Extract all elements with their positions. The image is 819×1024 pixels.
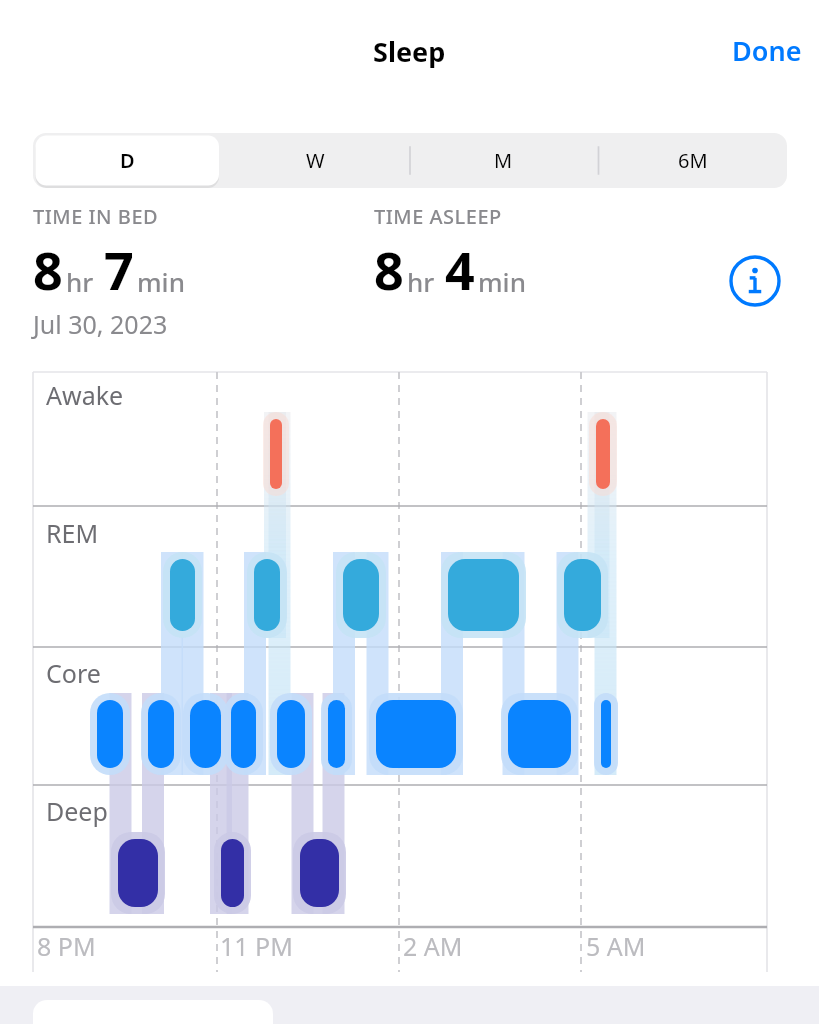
- staticText: 8: [33, 234, 63, 305]
- staticText: REM: [46, 516, 99, 550]
- staticText: 5 AM: [586, 929, 646, 963]
- staticText: 8 PM: [37, 929, 96, 963]
- staticText: TIME ASLEEP: [374, 203, 502, 230]
- staticText: 7: [104, 234, 134, 305]
- staticText: 6M: [678, 147, 708, 174]
- staticText: hr: [407, 264, 435, 299]
- staticText: 4: [445, 234, 475, 305]
- staticText: Deep: [46, 794, 108, 828]
- staticText: Done: [732, 32, 802, 69]
- staticText: 2 AM: [403, 929, 463, 963]
- staticText: 8: [374, 234, 404, 305]
- button[interactable]: M: [409, 133, 598, 188]
- staticText: Awake: [46, 378, 124, 412]
- button[interactable]: Done: [715, 22, 819, 79]
- button[interactable]: D: [33, 133, 221, 188]
- staticText: 11 PM: [220, 929, 293, 963]
- staticText: M: [494, 147, 513, 174]
- staticText: hr: [66, 264, 94, 299]
- button[interactable]: About sleep stages: [727, 253, 783, 309]
- staticText: min: [137, 264, 185, 299]
- button[interactable]: W: [221, 133, 409, 188]
- staticText: Jul 30, 2023: [33, 307, 168, 341]
- staticText: TIME IN BED: [33, 203, 159, 230]
- button[interactable]: 6M: [598, 133, 787, 188]
- staticText: min: [478, 264, 526, 299]
- staticText: W: [306, 147, 325, 174]
- staticText: Sleep: [373, 33, 446, 70]
- staticText: D: [120, 147, 135, 174]
- staticText: Core: [46, 656, 101, 690]
